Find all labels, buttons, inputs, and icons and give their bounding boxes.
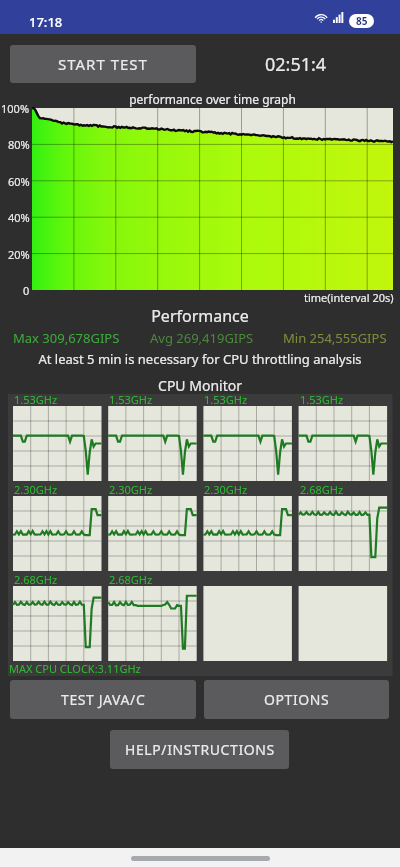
staticText: 1.53GHz [204,392,248,407]
staticText: CPU Monitor [0,376,400,395]
staticText: 1.53GHz [300,392,344,407]
staticText: 40% [8,210,30,225]
staticText: TEST JAVA/C [61,690,146,709]
staticText: 2.68GHz [300,482,344,497]
staticText: Performance [0,305,400,327]
other: Mobile signal [333,12,344,23]
staticText: OPTIONS [264,690,330,709]
staticText: 02:51:4 [265,52,327,77]
staticText: 2.30GHz [204,482,248,497]
staticText: time(interval 20s) [304,290,394,305]
staticText: MAX CPU CLOCK:3.11GHz [9,661,141,676]
staticText: 2.30GHz [14,482,58,497]
staticText: 2.68GHz [14,572,58,587]
staticText: Max 309,678GIPS [13,329,120,347]
staticText: 85 [356,14,368,28]
staticText: 2.68GHz [109,572,153,587]
other: Wi-Fi [315,10,329,23]
staticText: 17:18 [29,13,63,31]
staticText: 80% [8,137,30,152]
staticText: 20% [8,247,30,262]
staticText: Min 254,555GIPS [283,329,387,347]
button[interactable]: OPTIONS [204,680,389,719]
staticText: HELP/INSTRUCTIONS [125,740,275,759]
staticText: 1.53GHz [14,392,58,407]
staticText: 1.53GHz [109,392,153,407]
staticText: 0 [23,283,30,298]
staticText: performance over time graph [32,91,393,107]
staticText: At least 5 min is necessary for CPU thro… [0,350,400,368]
staticText: 60% [8,174,30,189]
staticText: START TEST [58,54,148,74]
button[interactable]: TEST JAVA/C [10,680,196,719]
staticText: Avg 269,419GIPS [150,329,254,347]
button[interactable]: START TEST [10,45,196,83]
staticText: 100% [1,101,30,116]
button[interactable]: HELP/INSTRUCTIONS [110,730,289,769]
staticText: 2.30GHz [109,482,153,497]
